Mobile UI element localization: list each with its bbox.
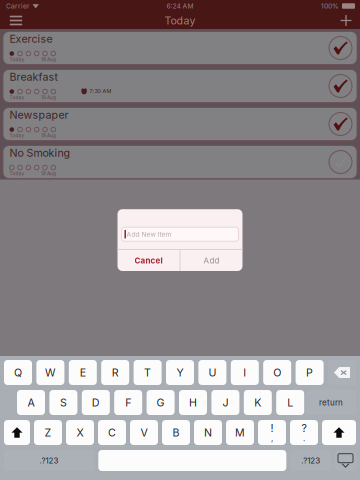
staticText: T <box>144 366 151 379</box>
staticText: Today <box>164 14 195 27</box>
staticText: Add <box>203 256 219 265</box>
staticText: 18 Aug <box>41 133 56 138</box>
button[interactable]: Add <box>180 250 242 271</box>
staticText: W <box>45 366 56 379</box>
button[interactable]: Y <box>166 360 194 385</box>
staticText: Exercise <box>9 32 52 45</box>
button[interactable]: U <box>198 360 226 385</box>
staticText: N <box>204 426 212 439</box>
staticText: K <box>254 396 261 409</box>
button[interactable]: V <box>130 420 158 445</box>
staticText: I <box>243 366 246 379</box>
staticText: . <box>303 434 305 443</box>
staticText: Breakfast <box>9 70 57 83</box>
staticText: Q <box>14 366 22 379</box>
button[interactable] <box>98 450 286 471</box>
staticText: Today <box>9 133 24 138</box>
staticText: M <box>235 426 245 439</box>
button[interactable]: T <box>134 360 162 385</box>
staticText: X <box>76 426 83 439</box>
button[interactable]: ? <box>290 420 318 445</box>
button[interactable]: Menu <box>4 12 28 29</box>
staticText: 18 Aug <box>41 171 56 176</box>
button[interactable]: A <box>17 390 45 415</box>
button[interactable]: Exercise <box>3 31 357 64</box>
button[interactable]: J <box>211 390 239 415</box>
button[interactable]: X <box>66 420 94 445</box>
button[interactable]: C <box>98 420 126 445</box>
staticText: 7:30 AM <box>89 88 111 94</box>
button[interactable]: Shift <box>322 420 356 445</box>
staticText: 18 Aug <box>41 95 56 100</box>
button[interactable]: P <box>296 360 324 385</box>
button[interactable]: Delete <box>328 360 356 385</box>
button[interactable]: Z <box>34 420 62 445</box>
button[interactable]: Q <box>4 360 32 385</box>
button[interactable]: Cancel <box>118 250 180 271</box>
staticText: F <box>125 396 131 409</box>
button[interactable]: W <box>36 360 64 385</box>
button[interactable]: Hide keyboard <box>335 450 356 471</box>
button[interactable]: I <box>231 360 259 385</box>
button[interactable]: G <box>147 390 175 415</box>
staticText: Today <box>9 95 24 100</box>
button[interactable]: D <box>82 390 110 415</box>
staticText: 100% <box>321 2 339 10</box>
staticText: 6:24 AM <box>166 2 193 10</box>
staticText: .?123 <box>39 456 58 465</box>
button[interactable]: M <box>226 420 254 445</box>
staticText: O <box>273 366 281 379</box>
button[interactable]: H <box>179 390 207 415</box>
button[interactable]: R <box>101 360 129 385</box>
staticText: U <box>208 366 216 379</box>
button[interactable]: E <box>69 360 97 385</box>
button[interactable]: .?123 <box>291 450 331 471</box>
staticText: A <box>27 396 34 409</box>
button[interactable]: F <box>114 390 142 415</box>
staticText: return <box>319 398 343 407</box>
staticText: V <box>140 426 147 439</box>
staticText: No Smoking <box>9 146 70 159</box>
staticText: R <box>112 366 119 379</box>
staticText: ! <box>270 422 273 435</box>
button[interactable]: return <box>306 390 356 415</box>
button[interactable]: L <box>276 390 304 415</box>
staticText: B <box>172 426 179 439</box>
staticText: Carrier <box>6 2 30 10</box>
button[interactable]: Breakfast <box>3 69 357 102</box>
button[interactable]: Add new item <box>334 12 358 29</box>
staticText: L <box>287 396 293 409</box>
staticText: Y <box>176 366 183 379</box>
staticText: P <box>306 366 313 379</box>
staticText: Newspaper <box>9 108 68 121</box>
button[interactable]: Shift <box>4 420 30 445</box>
staticText: , <box>271 434 273 443</box>
button[interactable]: .?123 <box>4 450 94 471</box>
staticText: S <box>60 396 67 409</box>
staticText: Add New Item <box>126 230 171 238</box>
button[interactable]: N <box>194 420 222 445</box>
button[interactable]: O <box>263 360 291 385</box>
staticText: Z <box>44 426 51 439</box>
staticText: .?123 <box>301 456 320 465</box>
staticText: C <box>108 426 116 439</box>
button[interactable]: S <box>49 390 77 415</box>
staticText: H <box>189 396 197 409</box>
staticText: E <box>80 366 86 379</box>
staticText: Cancel <box>135 256 163 265</box>
button[interactable]: K <box>244 390 272 415</box>
button[interactable]: B <box>162 420 190 445</box>
staticText: G <box>157 396 165 409</box>
staticText: 18 Aug <box>41 57 56 62</box>
staticText: J <box>222 396 228 409</box>
staticText: Today <box>9 57 24 62</box>
button[interactable]: No Smoking <box>3 145 357 178</box>
staticText: D <box>92 396 100 409</box>
button[interactable]: ! <box>258 420 286 445</box>
staticText: Today <box>9 171 24 176</box>
staticText: ? <box>301 422 306 435</box>
button[interactable]: Newspaper <box>3 107 357 140</box>
